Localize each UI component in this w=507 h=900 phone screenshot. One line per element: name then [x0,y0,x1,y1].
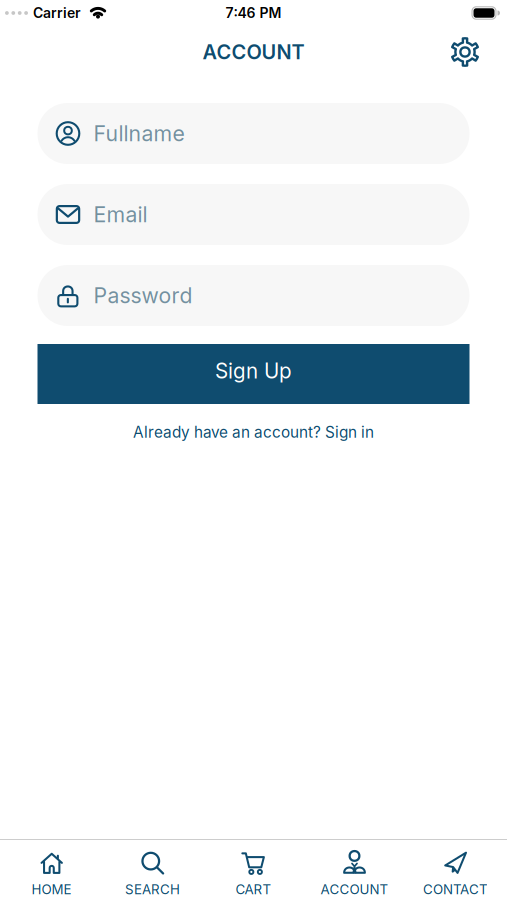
staticText: Password [93,283,192,308]
button[interactable]: CART [203,839,304,900]
staticText: Fullname [93,121,184,146]
button[interactable]: Password [37,265,469,326]
button[interactable]: Settings [450,37,480,67]
staticText: Email [93,202,147,227]
button[interactable]: CONTACT [405,839,506,900]
button[interactable]: Email [37,184,469,245]
staticText: Already have an account? Sign in [133,423,374,442]
button[interactable]: Fullname [37,103,469,164]
staticText: CART [235,881,271,897]
staticText: Carrier [33,4,81,21]
staticText: ACCOUNT [202,40,304,64]
staticText: 7:46 PM [225,4,281,21]
staticText: Sign Up [215,358,292,383]
staticText: CONTACT [423,881,488,897]
button[interactable]: SEARCH [102,839,203,900]
staticText: HOME [31,881,71,897]
button[interactable]: Sign Up [37,344,469,404]
staticText: SEARCH [125,881,180,897]
button[interactable]: HOME [1,839,102,900]
staticText: ACCOUNT [320,881,388,897]
button[interactable]: ACCOUNT [304,839,405,900]
button[interactable]: Already have an account? Sign in [133,423,374,442]
